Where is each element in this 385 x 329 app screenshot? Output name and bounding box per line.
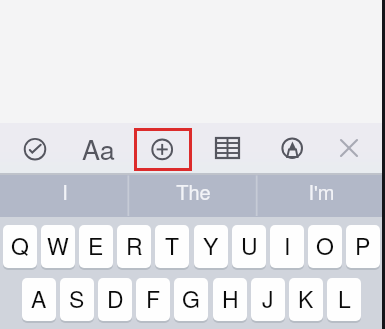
button[interactable]: Markup bbox=[271, 124, 313, 172]
button[interactable]: H bbox=[213, 278, 247, 321]
button[interactable]: I bbox=[270, 225, 304, 268]
staticText: O bbox=[316, 229, 334, 262]
staticText: L bbox=[338, 282, 351, 315]
button[interactable]: E bbox=[79, 225, 113, 268]
staticText: K bbox=[298, 282, 314, 315]
staticText: U bbox=[241, 229, 258, 262]
button[interactable]: W bbox=[41, 225, 75, 268]
staticText: W bbox=[47, 229, 69, 262]
button[interactable]: S bbox=[60, 278, 94, 321]
button[interactable]: Table bbox=[206, 124, 248, 172]
button[interactable]: P bbox=[346, 225, 380, 268]
button[interactable]: Close bbox=[328, 124, 370, 172]
staticText: F bbox=[146, 282, 161, 315]
staticText: G bbox=[182, 282, 200, 315]
staticText: I'm bbox=[308, 177, 335, 206]
button[interactable]: I bbox=[0, 175, 129, 217]
button[interactable]: U bbox=[232, 225, 266, 268]
staticText: E bbox=[88, 229, 104, 262]
button[interactable]: Done bbox=[14, 124, 56, 172]
button[interactable]: I'm bbox=[257, 175, 385, 217]
button[interactable]: Y bbox=[194, 225, 228, 268]
staticText: Aa bbox=[82, 129, 115, 168]
staticText: I bbox=[62, 177, 68, 206]
staticText: The bbox=[176, 177, 211, 206]
staticText: P bbox=[355, 229, 371, 262]
button[interactable]: G bbox=[174, 278, 208, 321]
button[interactable]: The bbox=[129, 175, 257, 217]
button[interactable]: O bbox=[308, 225, 342, 268]
button[interactable]: R bbox=[117, 225, 151, 268]
button[interactable]: Insert bbox=[134, 128, 192, 171]
button[interactable]: Q bbox=[3, 225, 37, 268]
button[interactable]: L bbox=[327, 278, 361, 321]
staticText: R bbox=[126, 229, 143, 262]
button[interactable]: T bbox=[155, 225, 189, 268]
staticText: I bbox=[284, 229, 291, 262]
staticText: J bbox=[262, 282, 274, 315]
button[interactable]: Aa bbox=[80, 123, 116, 173]
staticText: T bbox=[165, 229, 180, 262]
staticText: H bbox=[222, 282, 239, 315]
button[interactable]: F bbox=[136, 278, 170, 321]
staticText: Q bbox=[11, 229, 29, 262]
staticText: D bbox=[107, 282, 124, 315]
button[interactable]: D bbox=[98, 278, 132, 321]
button[interactable]: J bbox=[251, 278, 285, 321]
button[interactable]: K bbox=[289, 278, 323, 321]
staticText: A bbox=[31, 282, 47, 315]
button[interactable]: A bbox=[22, 278, 56, 321]
staticText: Y bbox=[203, 229, 219, 262]
staticText: S bbox=[69, 282, 85, 315]
